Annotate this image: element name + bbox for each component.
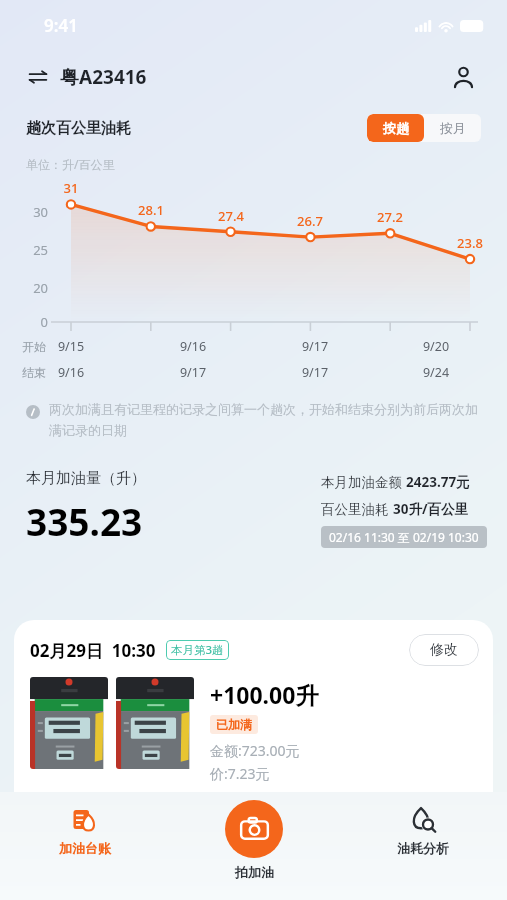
button[interactable]: Fuel pump photo <box>116 677 194 769</box>
button[interactable]: Switch vehicle <box>26 58 149 96</box>
staticText: 30 <box>20 203 48 221</box>
staticText: 9/17 <box>172 364 214 381</box>
button[interactable]: 油耗分析 <box>338 792 507 856</box>
button[interactable]: 修改 <box>409 634 479 666</box>
staticText: 本月加油金额 <box>321 473 406 491</box>
staticText: 修改 <box>430 641 458 659</box>
button[interactable]: 按月 <box>424 114 481 142</box>
staticText: 9/17 <box>294 338 336 355</box>
staticText: 趟次百公里油耗 <box>26 119 131 138</box>
staticText: 27.2 <box>369 208 411 226</box>
staticText: 9/15 <box>50 338 92 355</box>
staticText: 20 <box>20 279 48 297</box>
staticText: 27.4 <box>210 207 252 225</box>
button[interactable]: Account <box>445 59 481 95</box>
staticText: 9:41 <box>44 14 78 37</box>
staticText: 单位：升/百公里 <box>26 156 115 172</box>
staticText: 两次加满且有记里程的记录之间算一个趟次，开始和结束分别为前后两次加满记录的日期 <box>49 401 483 439</box>
staticText: 油耗分析 <box>397 840 449 856</box>
staticText: 金额:723.00元 <box>210 741 300 760</box>
other: 加油台账 <box>72 808 97 833</box>
button[interactable]: 拍加油 <box>235 864 274 880</box>
staticText: 02月29日 10:30 <box>30 639 156 662</box>
staticText: 9/16 <box>50 364 92 381</box>
staticText: 结束 <box>22 365 51 380</box>
other: Switch vehicle <box>28 67 48 87</box>
staticText: 335.23 <box>26 496 143 546</box>
staticText: 25 <box>20 241 48 259</box>
other: 油耗分析 <box>410 808 435 833</box>
staticText: 开始 <box>22 339 51 354</box>
button[interactable]: 加油台账 <box>0 792 169 856</box>
staticText: 加油台账 <box>59 840 111 856</box>
staticText: 本月加油量（升） <box>26 469 146 488</box>
staticText: 02/16 11:30 至 02/19 10:30 <box>329 529 479 545</box>
staticText: 百公里油耗 <box>321 500 393 518</box>
staticText: 9/20 <box>415 338 457 355</box>
staticText: 31 <box>50 179 92 197</box>
staticText: 23.8 <box>449 234 491 252</box>
staticText: 按趟 <box>383 120 409 136</box>
staticText: 9/16 <box>172 338 214 355</box>
button[interactable]: 拍加油 <box>225 800 283 858</box>
staticText: 30升/百公里 <box>393 500 469 518</box>
staticText: 26.7 <box>289 212 331 230</box>
staticText: 已加满 <box>216 717 252 732</box>
button[interactable]: 02月29日 10:30 <box>14 620 493 792</box>
staticText: 9/17 <box>294 364 336 381</box>
button[interactable]: 按趟 <box>367 114 424 142</box>
staticText: 按月 <box>440 120 466 136</box>
staticText: 粤A23416 <box>60 64 147 90</box>
staticText: +100.00升 <box>210 679 319 710</box>
staticText: 28.1 <box>130 201 172 219</box>
staticText: 价:7.23元 <box>210 764 270 783</box>
staticText: 2423.77元 <box>406 473 470 491</box>
button[interactable]: Fuel pump photo <box>30 677 108 769</box>
staticText: 0 <box>20 313 48 331</box>
staticText: 9/24 <box>415 364 457 381</box>
staticText: 本月第3趟 <box>171 642 224 658</box>
